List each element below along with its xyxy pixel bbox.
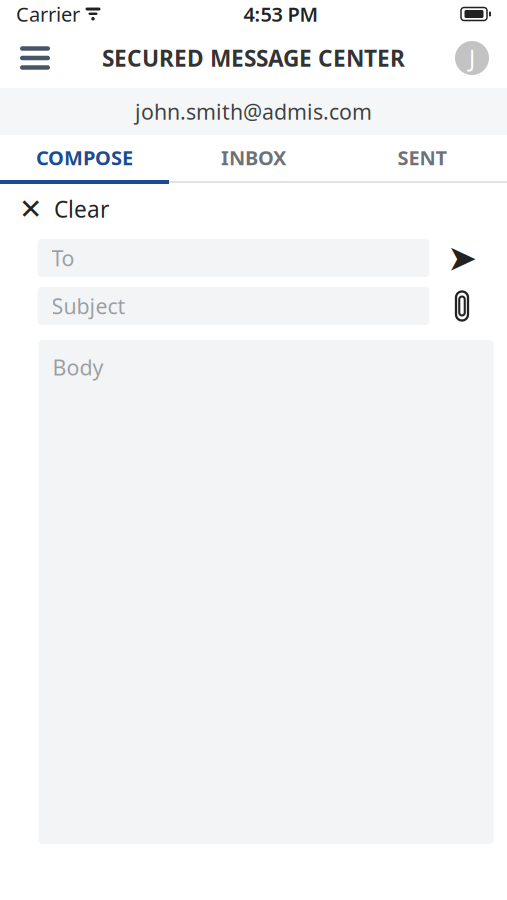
button[interactable]: COMPOSE <box>0 135 169 180</box>
button[interactable]: Menu <box>6 28 64 88</box>
staticText: SENT <box>397 144 447 171</box>
staticText: J <box>469 43 475 73</box>
staticText: Clear <box>54 194 109 224</box>
staticText: Subject <box>51 292 125 320</box>
staticText: ✕ <box>19 193 42 225</box>
button[interactable]: SENT <box>338 135 507 180</box>
button[interactable]: Send <box>429 234 494 282</box>
button[interactable]: INBOX <box>169 135 338 180</box>
button[interactable]: ✕ <box>0 184 129 234</box>
staticText: Carrier <box>16 1 80 27</box>
staticText: INBOX <box>221 144 286 171</box>
staticText: ➤ <box>447 238 477 278</box>
staticText: To <box>51 244 74 272</box>
staticText: Body <box>52 353 103 381</box>
staticText: 4:53 PM <box>243 1 318 27</box>
staticText: COMPOSE <box>36 144 133 171</box>
staticText: john.smith@admis.com <box>135 97 372 126</box>
button[interactable]: Account <box>443 28 501 88</box>
staticText: SECURED MESSAGE CENTER <box>102 43 405 73</box>
button[interactable]: Attach file <box>429 282 494 330</box>
